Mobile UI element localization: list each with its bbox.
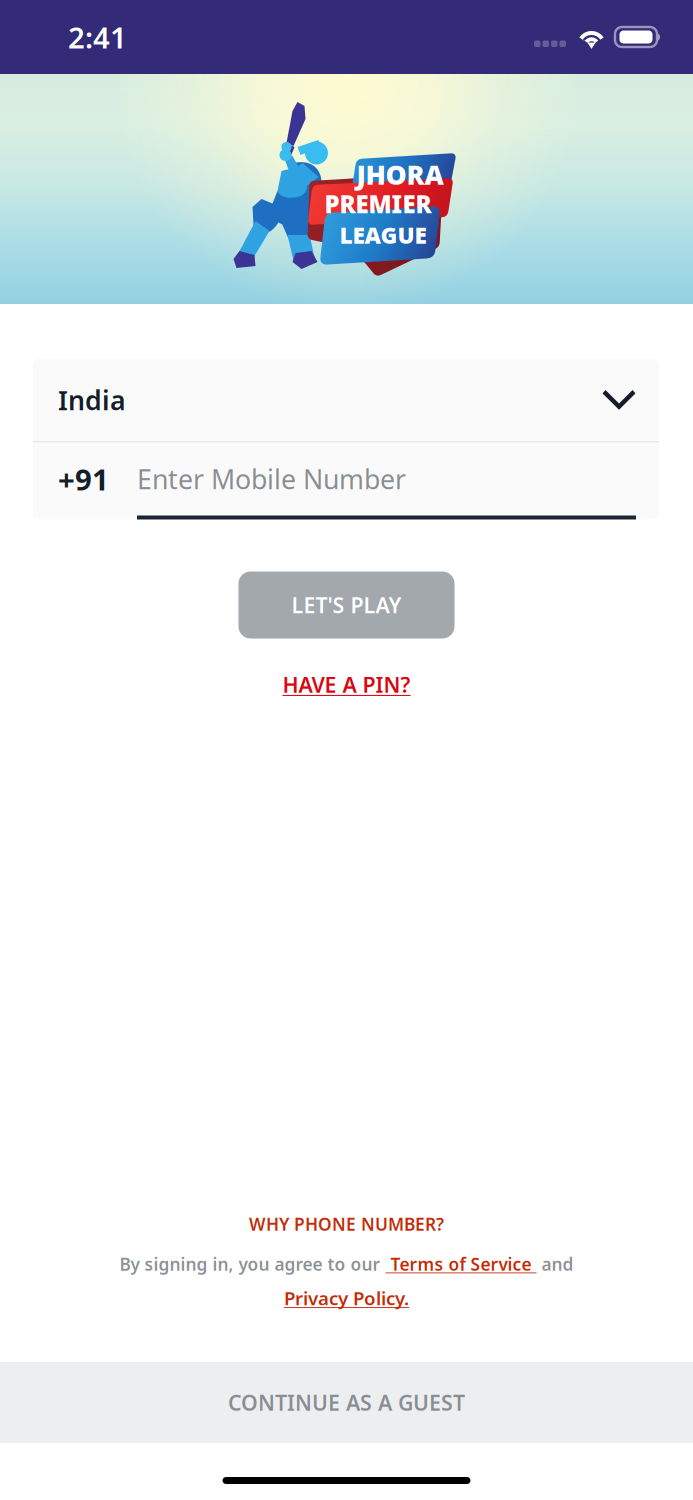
button[interactable]: India [33, 359, 659, 441]
staticText: HAVE A PIN? [282, 670, 410, 699]
button[interactable]: HAVE A PIN? [282, 666, 410, 702]
button[interactable]: LET'S PLAY [238, 571, 454, 638]
staticText: +91 [58, 459, 109, 498]
staticText: CONTINUE AS A GUEST [228, 1388, 465, 1417]
staticText: 2:41 [68, 17, 127, 56]
staticText: Terms of Service [385, 1252, 536, 1275]
staticText: LET'S PLAY [291, 591, 401, 619]
staticText: LEAGUE [339, 220, 426, 250]
staticText: PREMIER [324, 188, 431, 220]
button[interactable]: WHY PHONE NUMBER? [249, 1213, 444, 1235]
button[interactable]: CONTINUE AS A GUEST [0, 1362, 693, 1443]
staticText: and [536, 1252, 573, 1275]
staticText: Enter Mobile Number [137, 461, 406, 497]
button[interactable]: Terms of Service [385, 1252, 536, 1275]
button[interactable]: Privacy Policy. [284, 1286, 409, 1310]
staticText: WHY PHONE NUMBER? [249, 1212, 444, 1235]
staticText: India [58, 382, 126, 418]
staticText: JHORA [356, 157, 443, 192]
staticText: Privacy Policy. [284, 1286, 409, 1310]
staticText: By signing in, you agree to our [119, 1252, 385, 1275]
